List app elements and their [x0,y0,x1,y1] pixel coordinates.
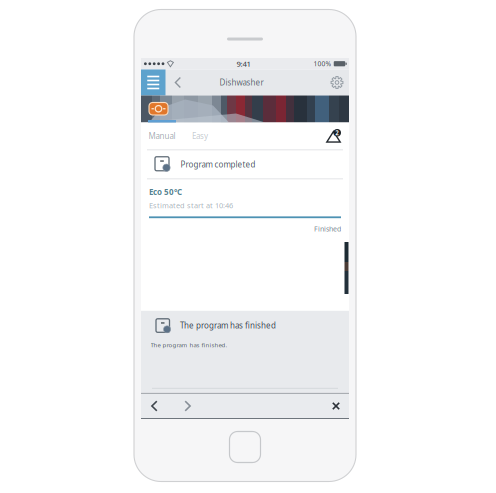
staticText: Manual [148,131,175,141]
button[interactable]: Settings [325,69,349,95]
staticText: Dishwasher [219,77,263,88]
button[interactable]: Menu [141,69,165,95]
button[interactable]: Previous [143,394,165,418]
staticText: Eco 50°C [149,186,182,197]
staticText: Finished [314,224,341,234]
button[interactable]: Next [165,394,199,418]
staticText: Easy [192,131,208,141]
button[interactable]: Close [325,394,347,418]
button[interactable]: Back [167,69,187,95]
staticText: The program has finished. [150,341,227,349]
staticText: 100% [313,59,331,68]
button[interactable]: Warnings [324,122,349,149]
button[interactable]: Program completed [141,150,349,178]
button[interactable]: Easy [179,122,212,149]
staticText: The program has finished [180,320,276,331]
button[interactable]: Manual [141,122,179,149]
staticText: Program completed [180,159,255,170]
staticText: Estimated start at 10:46 [149,200,233,210]
staticText: 2 [335,129,339,137]
staticText: 9:41 [236,58,250,69]
